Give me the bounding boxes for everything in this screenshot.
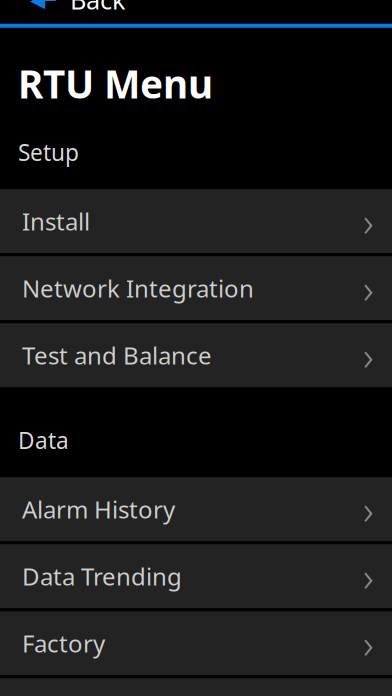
staticText: Factory (22, 627, 105, 659)
staticText: Data (18, 425, 69, 455)
button[interactable]: ◀ (0, 0, 142, 24)
button[interactable]: Factory (0, 611, 392, 675)
button[interactable]: Install (0, 189, 392, 253)
staticText: Alarm History (22, 493, 175, 525)
staticText: Test and Balance (22, 339, 212, 371)
staticText: Setup (18, 137, 79, 167)
staticText: Install (22, 205, 90, 237)
staticText: › (363, 329, 374, 382)
staticText: RTU Menu (18, 58, 213, 109)
staticText: › (363, 195, 374, 248)
button[interactable]: Alarm History (0, 477, 392, 541)
button[interactable]: Data Trending (0, 544, 392, 608)
staticText: Back (70, 0, 126, 16)
button[interactable]: Network Integration (0, 256, 392, 320)
staticText: Network Integration (22, 272, 254, 304)
staticText: › (363, 550, 374, 603)
button[interactable]: Test and Balance (0, 323, 392, 387)
staticText: ◀ (30, 0, 45, 11)
staticText: › (363, 483, 374, 536)
staticText: Data Trending (22, 560, 182, 592)
staticText: › (363, 617, 374, 670)
staticText: › (363, 262, 374, 315)
